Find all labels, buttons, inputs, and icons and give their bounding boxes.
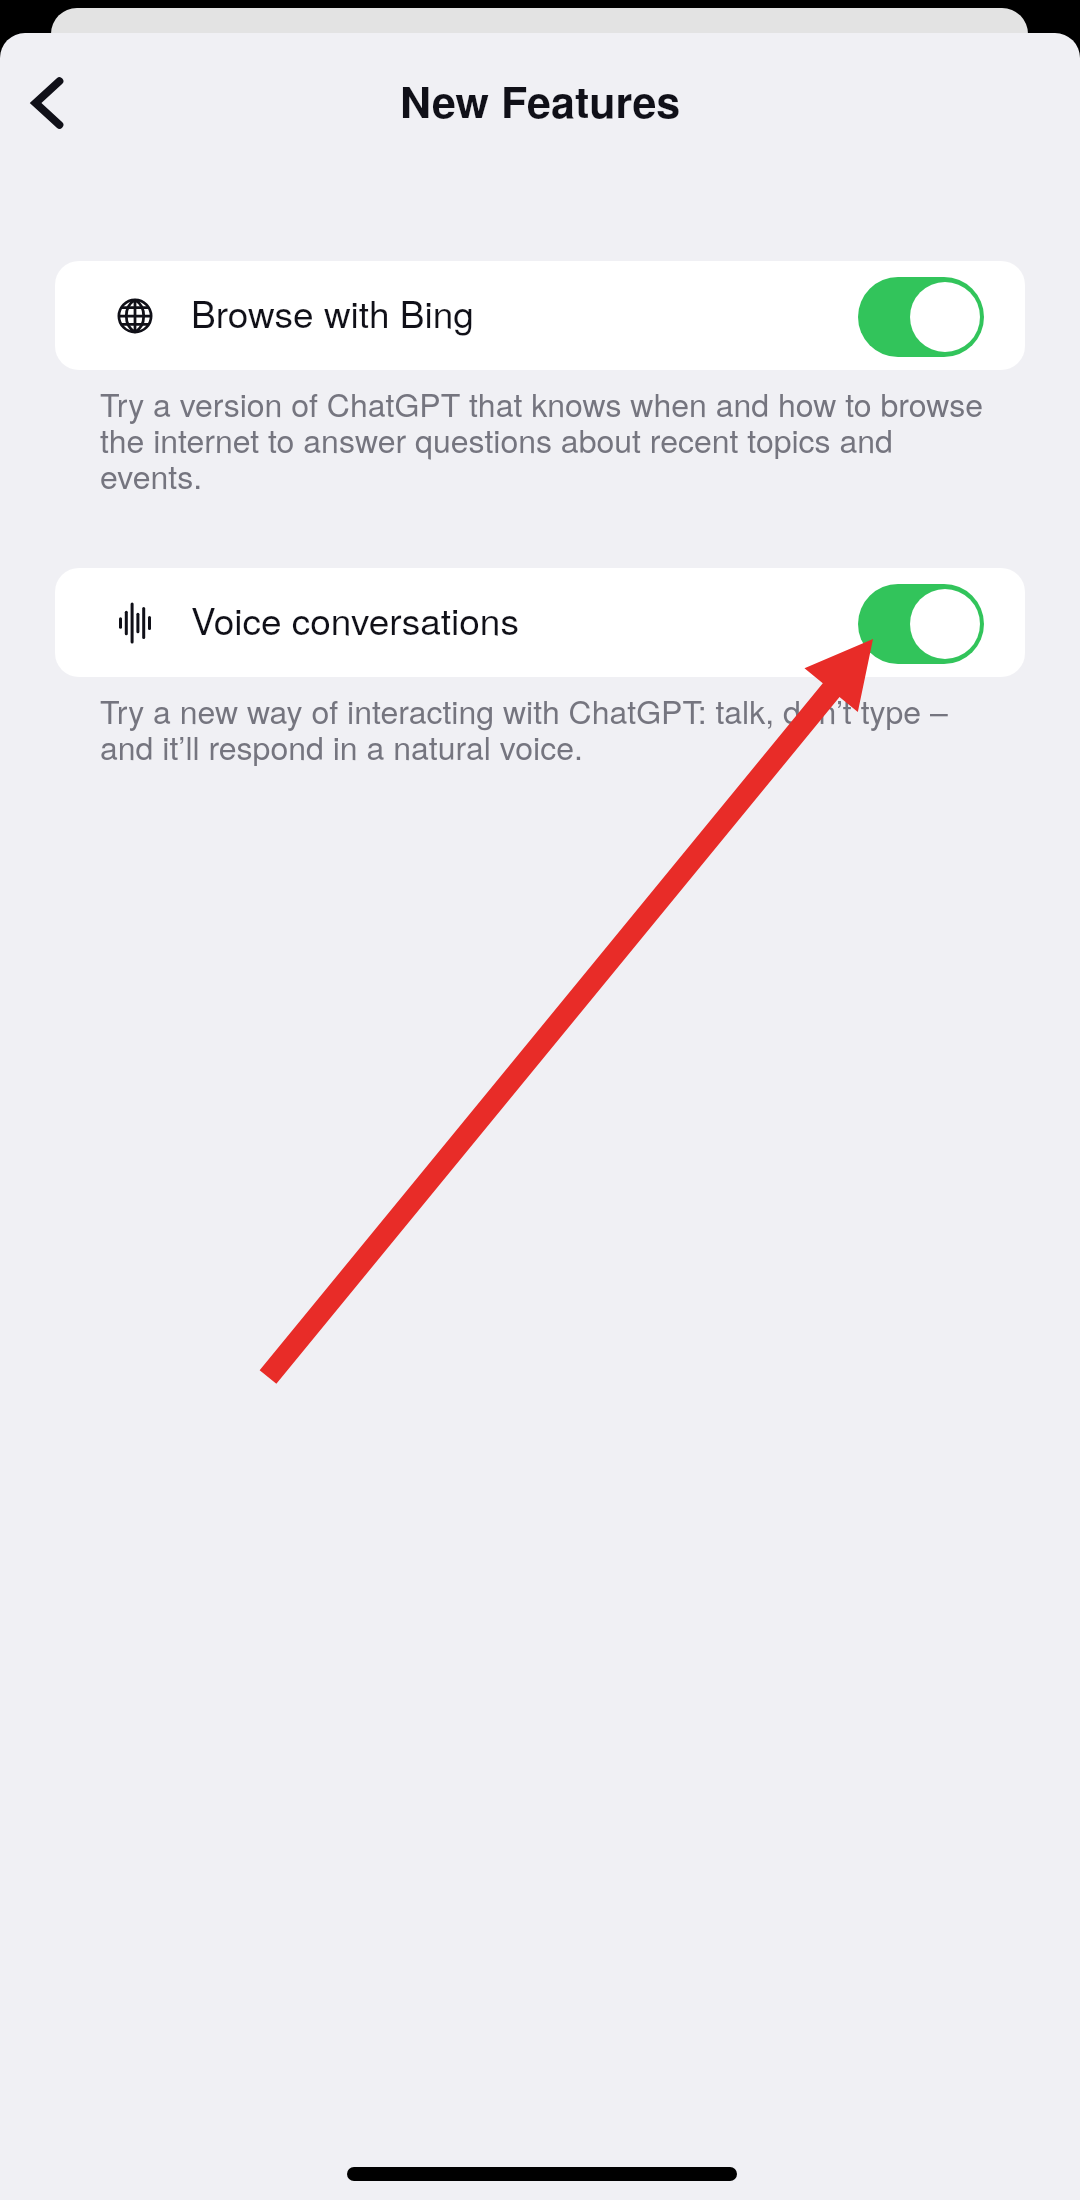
staticText: Try a version of ChatGPT that knows when…: [100, 380, 990, 498]
button[interactable]: Browse with Bing: [55, 261, 1025, 370]
button[interactable]: Browse with Bing, on: [858, 277, 984, 357]
staticText: New Features: [400, 70, 681, 132]
button[interactable]: Voice conversations: [55, 568, 1025, 677]
staticText: Voice conversations: [191, 593, 519, 646]
button[interactable]: Back: [0, 52, 96, 154]
staticText: Browse with Bing: [191, 286, 474, 339]
button[interactable]: Voice conversations, on: [858, 584, 984, 664]
staticText: Try a new way of interacting with ChatGP…: [100, 687, 990, 769]
